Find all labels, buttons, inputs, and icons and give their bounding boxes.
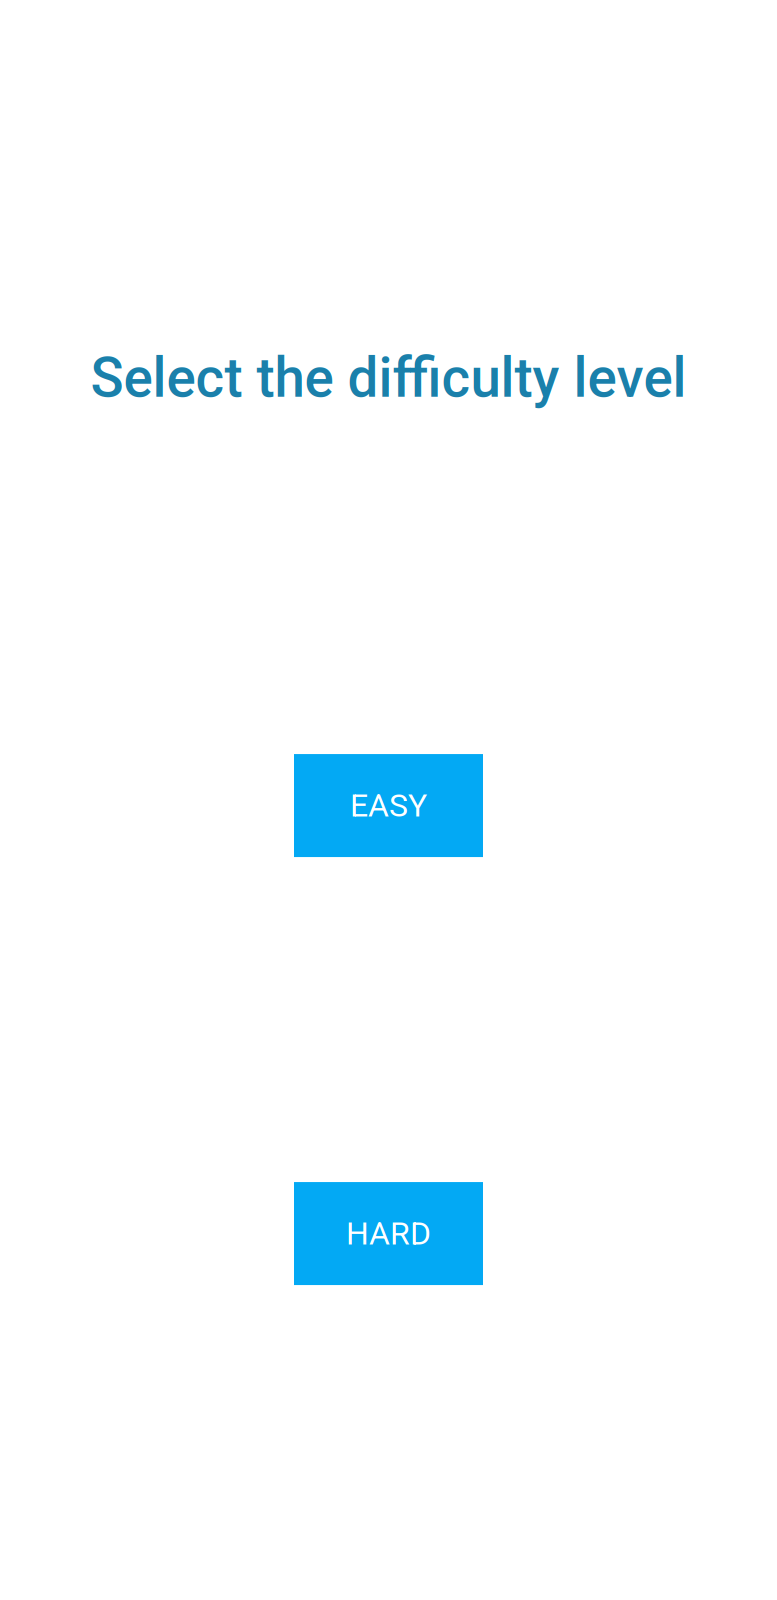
staticText: Select the difficulty level	[90, 346, 686, 410]
staticText: HARD	[346, 1215, 431, 1252]
button[interactable]: EASY	[294, 754, 483, 857]
button[interactable]: HARD	[294, 1182, 483, 1285]
staticText: EASY	[350, 787, 427, 824]
